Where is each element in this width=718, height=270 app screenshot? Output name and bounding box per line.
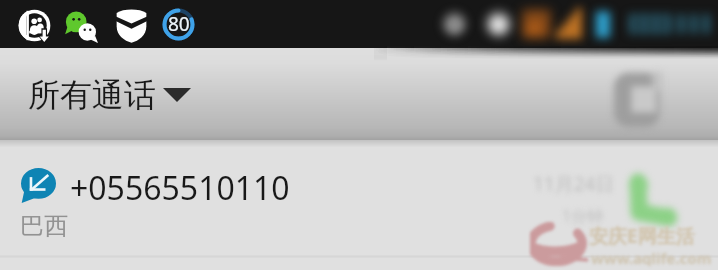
button[interactable]: Battery 80 percent: [161, 7, 196, 42]
staticText: www.aqlife.com: [591, 248, 712, 268]
staticText: 1分钟: [562, 205, 604, 227]
button[interactable]: Dial pad: [609, 69, 671, 131]
staticText: 11月24日: [533, 171, 615, 197]
staticText: 所有通话: [28, 75, 156, 115]
staticText: 80: [168, 11, 190, 37]
staticText: 巴西: [20, 211, 68, 241]
button[interactable]: +05565510110: [0, 147, 718, 270]
button[interactable]: 所有通话: [28, 75, 191, 115]
button[interactable]: WeChat: [64, 9, 101, 46]
button[interactable]: Call: [624, 173, 680, 229]
button[interactable]: Contacts sync: [18, 9, 51, 42]
button[interactable]: Security: [115, 9, 148, 42]
staticText: +05565510110: [70, 166, 290, 210]
staticText: 安庆E网生活: [589, 223, 695, 249]
